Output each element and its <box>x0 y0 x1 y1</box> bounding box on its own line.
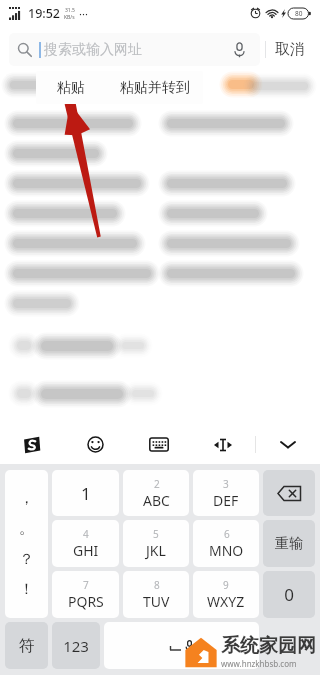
button[interactable]: 2 <box>123 470 189 516</box>
staticText: 系统家园网 <box>221 634 316 658</box>
staticText: JKL <box>146 541 166 560</box>
staticText: 123 <box>63 636 89 656</box>
staticText: GHI <box>73 541 99 560</box>
button[interactable]: 0 <box>263 571 315 618</box>
staticText: TUV <box>143 592 170 611</box>
button[interactable]: Voice search <box>226 37 252 63</box>
button[interactable]: 粘贴并转到 <box>106 71 203 104</box>
button[interactable]: ， <box>5 470 48 618</box>
staticText: 8 <box>154 578 160 592</box>
button[interactable]: 4 <box>52 520 119 567</box>
button[interactable]: 粘贴 <box>36 71 106 104</box>
staticText: 1 <box>81 482 91 505</box>
staticText: 31.5 <box>65 7 75 14</box>
button[interactable]: Emoji <box>63 425 127 464</box>
button[interactable]: 6 <box>193 520 259 567</box>
staticText: ， <box>19 489 34 508</box>
staticText: ！ <box>19 580 34 599</box>
staticText: ？ <box>19 550 34 569</box>
button[interactable]: 搜索或输入网址 <box>9 33 260 66</box>
staticText: DEF <box>213 491 239 510</box>
button[interactable]: 123 <box>52 622 100 669</box>
staticText: 5 <box>153 527 159 541</box>
staticText: 粘贴并转到 <box>120 79 190 97</box>
staticText: 2 <box>154 477 160 491</box>
staticText: 重输 <box>275 535 303 553</box>
button[interactable]: 重输 <box>263 520 315 567</box>
button[interactable]: 7 <box>52 571 119 618</box>
button[interactable]: Backspace <box>263 470 315 516</box>
button[interactable]: 取消 <box>266 32 314 66</box>
staticText: 9 <box>223 578 229 592</box>
staticText: 取消 <box>275 40 305 59</box>
button[interactable]: 5 <box>123 520 189 567</box>
staticText: WXYZ <box>207 592 245 611</box>
button[interactable]: Hide keyboard <box>256 425 320 464</box>
staticText: 19:52 <box>28 5 61 22</box>
staticText: 3 <box>223 477 229 491</box>
button[interactable]: Sogou input <box>0 425 63 464</box>
button[interactable]: 9 <box>193 571 259 618</box>
staticText: 0 <box>284 583 294 606</box>
staticText: PQRS <box>68 592 104 611</box>
staticText: 80 <box>295 9 303 18</box>
staticText: 搜索或输入网址 <box>44 41 142 59</box>
staticText: ··· <box>79 6 88 21</box>
staticText: MNO <box>209 541 244 560</box>
button[interactable]: 8 <box>123 571 189 618</box>
button[interactable]: Space / voice input <box>104 622 259 669</box>
staticText: www.hnzkhbsb.com <box>221 658 297 669</box>
staticText: 6 <box>224 527 230 541</box>
button[interactable]: 符 <box>5 622 48 669</box>
staticText: 粘贴 <box>57 79 85 97</box>
button[interactable]: 3 <box>193 470 259 516</box>
staticText: ABC <box>143 491 170 510</box>
staticText: 符 <box>19 636 35 656</box>
staticText: 7 <box>83 578 89 592</box>
staticText: KB/s <box>64 14 75 21</box>
button[interactable]: 1 <box>52 470 119 516</box>
staticText: 4 <box>83 527 89 541</box>
button[interactable]: Keyboard layout <box>127 425 191 464</box>
staticText: 。 <box>19 519 34 538</box>
button[interactable]: Move cursor <box>191 425 255 464</box>
